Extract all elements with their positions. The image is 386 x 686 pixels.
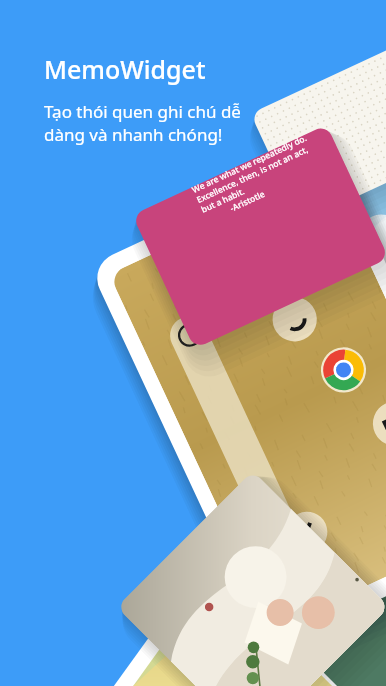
button[interactable]: Aristotle quote memo — [190, 185, 316, 229]
staticText: We are what we repeatedly do. Excellence… — [190, 132, 323, 225]
button[interactable]: MemoWidget — [44, 52, 249, 146]
staticText: Tạo thói quen ghi chú dễ dàng và nhanh c… — [44, 100, 241, 146]
button[interactable]: Cheat Day memo — [296, 108, 360, 163]
staticText: MemoWidget — [44, 52, 206, 86]
